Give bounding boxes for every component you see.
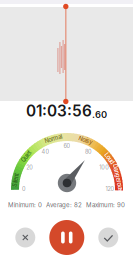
staticText: Quiet (20, 153, 33, 160)
staticText: 20 (26, 164, 33, 171)
staticText: Normal (44, 135, 62, 142)
staticText: 100 (99, 164, 109, 171)
staticText: .60 (92, 109, 107, 120)
staticText: Silent (9, 177, 23, 183)
button[interactable]: Done (98, 227, 118, 247)
staticText: Loud (103, 155, 115, 162)
staticText: Minimum: 0 (8, 201, 42, 209)
staticText: 60 (63, 143, 70, 149)
staticText: 01:03:56 (26, 102, 92, 120)
staticText: 80 (85, 148, 92, 155)
staticText: 40 (41, 148, 49, 155)
staticText: 120 (105, 186, 114, 192)
staticText: Average: 82 (46, 201, 82, 209)
staticText: 0 (22, 186, 26, 192)
staticText: Noisy (78, 137, 92, 144)
button[interactable]: Pause (49, 220, 84, 255)
button[interactable]: Cancel (15, 227, 35, 247)
staticText: Dangerous (104, 174, 132, 181)
staticText: Maximum: 90 (86, 201, 125, 209)
